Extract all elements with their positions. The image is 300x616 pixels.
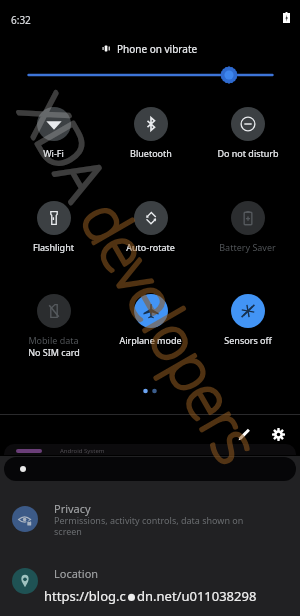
button[interactable]: Auto-rotate <box>102 201 199 253</box>
button[interactable]: Mobile data <box>5 294 102 358</box>
button[interactable]: Location <box>0 552 300 612</box>
button[interactable]: Sensors off <box>199 294 296 346</box>
button[interactable]: Do not disturb <box>199 107 296 159</box>
staticText: https://blog.c <box>44 587 126 605</box>
staticText: dn.net/u011038298 <box>137 587 257 605</box>
staticText: Wi-Fi <box>43 147 64 159</box>
staticText: Flashlight <box>33 241 74 253</box>
staticText: Battery Saver <box>219 241 276 253</box>
button[interactable]: Wi-Fi <box>5 107 102 159</box>
staticText: Auto-rotate <box>126 241 175 253</box>
button[interactable]: Bluetooth <box>102 107 199 159</box>
button[interactable]: Settings <box>264 420 293 449</box>
button[interactable]: Battery Saver <box>199 201 296 253</box>
staticText: Permissions, activity controls, data sho… <box>54 514 244 538</box>
button[interactable]: Flashlight <box>5 201 102 253</box>
button[interactable]: Privacy <box>0 486 300 548</box>
staticText: Do not disturb <box>217 147 279 159</box>
button[interactable] <box>4 457 296 481</box>
staticText: Sensors off <box>224 334 272 346</box>
button[interactable]: Airplane mode <box>102 294 199 346</box>
staticText: Phone on vibrate <box>117 42 198 55</box>
staticText: Android System <box>60 447 105 455</box>
staticText: Airplane mode <box>119 334 182 346</box>
staticText: Location <box>54 566 99 581</box>
staticText: Bluetooth <box>130 147 172 159</box>
button[interactable]: Edit <box>230 420 259 449</box>
staticText: No SIM card <box>28 346 80 358</box>
staticText: Privacy <box>54 501 91 516</box>
staticText: 6:32 <box>11 13 31 27</box>
staticText: Mobile data <box>28 334 79 346</box>
